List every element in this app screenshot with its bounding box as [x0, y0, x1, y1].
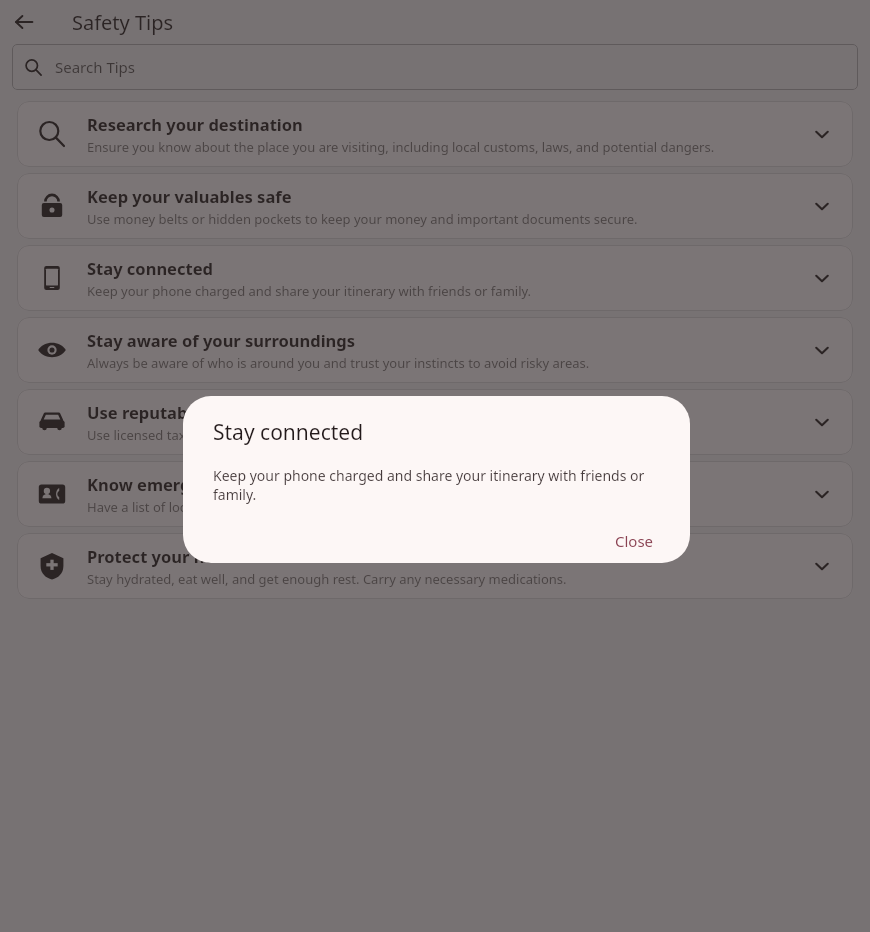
staticText: Stay connected: [213, 418, 364, 447]
staticText: Have a list of local emergency numbers a…: [87, 498, 538, 516]
button[interactable]: Know emergency contacts: [17, 461, 853, 527]
staticText: Safety Tips: [72, 9, 174, 36]
staticText: Protect your health: [87, 545, 247, 567]
staticText: Always be aware of who is around you and…: [87, 354, 590, 372]
staticText: Ensure you know about the place you are …: [87, 138, 715, 156]
staticText: Search Tips: [55, 57, 135, 77]
button[interactable]: Protect your health: [17, 533, 853, 599]
staticText: Stay hydrated, eat well, and get enough …: [87, 570, 567, 588]
staticText: Close: [615, 531, 654, 551]
button[interactable]: Close: [603, 525, 666, 557]
staticText: Use licensed taxis or trusted ride-shari…: [87, 426, 514, 444]
staticText: Keep your phone charged and share your i…: [87, 282, 532, 300]
button[interactable]: Search Tips: [12, 44, 858, 90]
staticText: Use reputable transport: [87, 401, 285, 423]
button[interactable]: Stay aware of your surroundings: [17, 317, 853, 383]
staticText: Research your destination: [87, 113, 303, 135]
staticText: Know emergency contacts: [87, 473, 304, 495]
button[interactable]: Research your destination: [17, 101, 853, 167]
staticText: Stay aware of your surroundings: [87, 329, 356, 351]
button[interactable]: Keep your valuables safe: [17, 173, 853, 239]
button[interactable]: Back: [10, 8, 38, 36]
staticText: Keep your phone charged and share your i…: [213, 466, 666, 504]
button[interactable]: Use reputable transport: [17, 389, 853, 455]
button[interactable]: Stay connected: [17, 245, 853, 311]
staticText: Use money belts or hidden pockets to kee…: [87, 210, 638, 228]
staticText: Stay connected: [87, 257, 213, 279]
staticText: Keep your valuables safe: [87, 185, 292, 207]
